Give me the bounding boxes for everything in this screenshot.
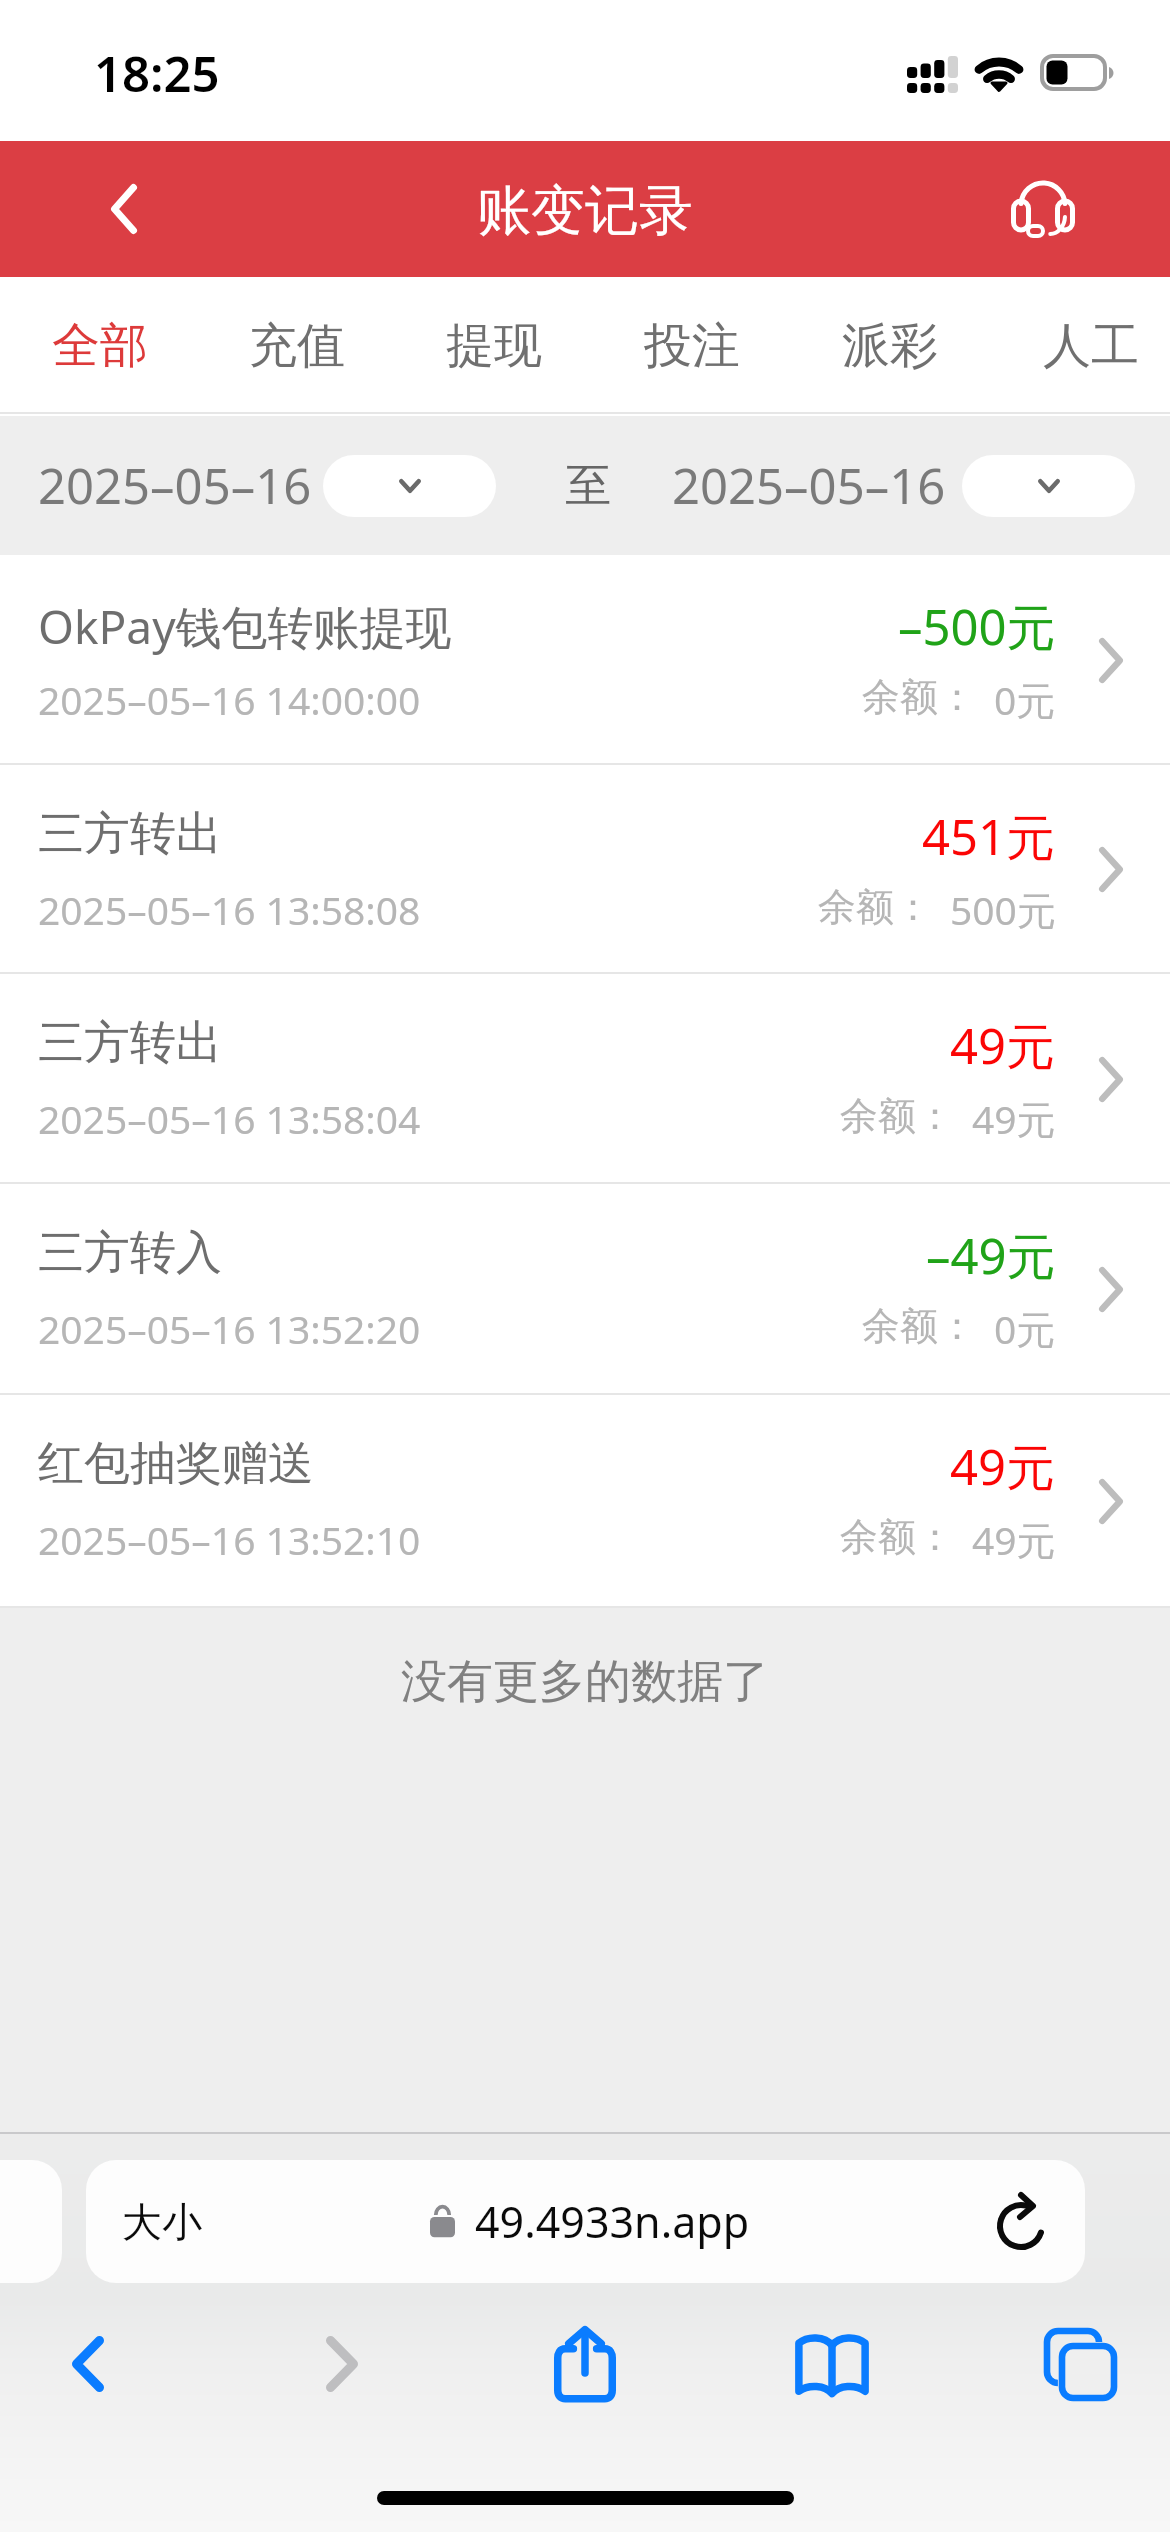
button[interactable]: 派彩 (791, 277, 989, 414)
button[interactable]: Share (525, 2309, 645, 2419)
button[interactable]: Forward (282, 2309, 402, 2419)
staticText: 2025–05–16 (672, 452, 946, 519)
staticText: 投注 (644, 316, 740, 376)
button[interactable]: 大小 (86, 2160, 1085, 2283)
button[interactable]: 三方转出 (0, 974, 1170, 1184)
staticText: 500元 (950, 883, 1056, 936)
staticText: 派彩 (842, 316, 938, 376)
button[interactable]: 三方转出 (0, 765, 1170, 974)
staticText: 至 (565, 457, 611, 515)
staticText: 2025–05–16 13:58:04 (38, 1092, 421, 1145)
staticText: 余额： (862, 1302, 976, 1350)
staticText: 49元 (950, 1433, 1056, 1500)
staticText: 人工 (1043, 316, 1139, 376)
staticText: 余额： (818, 883, 932, 931)
staticText: 三方转入 (38, 1224, 222, 1282)
button[interactable]: 人工 (992, 277, 1170, 414)
button[interactable]: Select date (962, 455, 1135, 517)
staticText: 49元 (972, 1513, 1056, 1566)
staticText: –49元 (926, 1222, 1056, 1289)
staticText: 2025–05–16 13:52:20 (38, 1302, 421, 1355)
staticText: 余额： (840, 1092, 954, 1140)
button[interactable]: Reload (987, 2187, 1057, 2257)
staticText: 2025–05–16 13:58:08 (38, 883, 421, 936)
button[interactable]: Back (28, 2309, 148, 2419)
button[interactable]: 全部 (1, 277, 199, 414)
button[interactable]: OkPay钱包转账提现 (0, 555, 1170, 765)
staticText: 提现 (446, 316, 542, 376)
staticText: 2025–05–16 14:00:00 (38, 673, 421, 726)
staticText: 没有更多的数据了 (401, 1653, 769, 1711)
staticText: 0元 (994, 1302, 1056, 1355)
staticText: 三方转出 (38, 805, 222, 863)
staticText: 0元 (994, 673, 1056, 726)
button[interactable]: Bookmarks (772, 2311, 892, 2421)
staticText: 49元 (972, 1092, 1056, 1145)
button[interactable]: Select date (323, 455, 496, 517)
button[interactable]: 三方转入 (0, 1184, 1170, 1395)
staticText: –500元 (898, 593, 1056, 660)
staticText: 全部 (52, 316, 148, 376)
staticText: 账变记录 (477, 177, 693, 245)
staticText: 451元 (922, 803, 1056, 870)
staticText: 余额： (862, 673, 976, 721)
button[interactable]: 红包抽奖赠送 (0, 1395, 1170, 1608)
staticText: 49元 (950, 1012, 1056, 1079)
button[interactable]: 充值 (198, 277, 396, 414)
button[interactable]: 投注 (593, 277, 791, 414)
staticText: 2025–05–16 (38, 452, 312, 519)
button[interactable]: Customer service (973, 138, 1113, 274)
staticText: 余额： (840, 1513, 954, 1561)
button[interactable]: Tabs (1020, 2309, 1140, 2419)
staticText: 大小 (122, 2197, 202, 2247)
staticText: 2025–05–16 13:52:10 (38, 1513, 421, 1566)
button[interactable]: Back (54, 141, 194, 277)
staticText: 18:25 (94, 40, 220, 107)
staticText: 红包抽奖赠送 (38, 1435, 314, 1493)
staticText: 充值 (249, 316, 345, 376)
staticText: OkPay钱包转账提现 (38, 595, 452, 658)
button[interactable]: 提现 (395, 277, 593, 414)
staticText: 三方转出 (38, 1014, 222, 1072)
staticText: 49.4933n.app (475, 2192, 750, 2251)
